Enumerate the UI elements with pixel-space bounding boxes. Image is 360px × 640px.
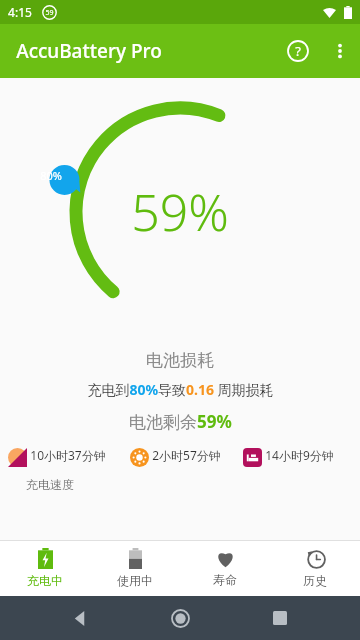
staticText: 2小时57分钟 [152, 447, 221, 463]
staticText: 充电到80%导致0.16 周期损耗 [87, 380, 274, 399]
staticText: 历史 [303, 573, 327, 588]
staticText: AccuBattery Pro [16, 38, 162, 64]
button[interactable]: 10小时37分钟 [8, 447, 126, 467]
staticText: 充电中 [27, 573, 63, 588]
staticText: 电池剩余59% [129, 410, 232, 433]
staticText: 4:15 [8, 4, 32, 20]
button[interactable]: Help [278, 31, 318, 71]
staticText: 10小时37分钟 [30, 447, 106, 463]
button[interactable]: 充电中 [0, 540, 90, 596]
button[interactable]: Back [60, 598, 100, 638]
button[interactable]: More options [320, 31, 360, 71]
staticText: 59% [131, 178, 229, 246]
staticText: 14小时9分钟 [265, 447, 334, 463]
staticText: 电池损耗 [146, 350, 214, 371]
button[interactable]: 使用中 [90, 540, 180, 596]
button[interactable]: 历史 [270, 540, 360, 596]
button[interactable]: Recents [260, 598, 300, 638]
staticText: 充电速度 [26, 477, 74, 491]
button[interactable]: 2小时57分钟 [130, 447, 239, 467]
staticText: 使用中 [117, 573, 153, 588]
button[interactable]: 寿命 [180, 540, 270, 596]
button[interactable]: Home [160, 598, 200, 638]
button[interactable]: 充电速度 [0, 477, 360, 491]
staticText: ? [295, 42, 301, 60]
staticText: 寿命 [213, 572, 237, 587]
staticText: 59 [45, 8, 54, 18]
button[interactable]: 14小时9分钟 [243, 447, 352, 467]
staticText: 80% [40, 168, 62, 183]
